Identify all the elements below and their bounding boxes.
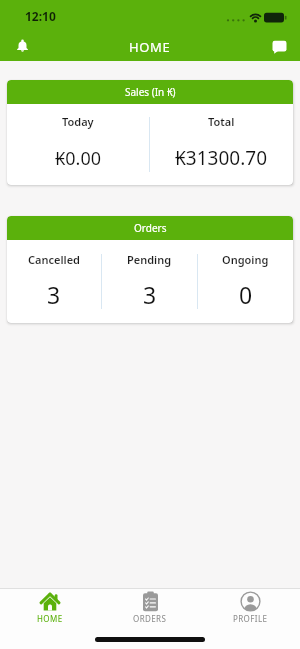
staticText: Total bbox=[208, 114, 235, 129]
button[interactable] bbox=[271, 39, 287, 55]
staticText: ORDERS bbox=[133, 613, 167, 624]
staticText: 0 bbox=[239, 279, 253, 310]
staticText: ₭31300.70 bbox=[175, 145, 268, 171]
button[interactable]: ORDERS bbox=[100, 591, 200, 626]
staticText: Today bbox=[62, 114, 94, 129]
staticText: HOME bbox=[37, 613, 63, 624]
staticText: HOME bbox=[129, 38, 171, 56]
staticText: Cancelled bbox=[28, 252, 80, 267]
button[interactable]: Pending bbox=[102, 240, 197, 323]
button[interactable]: HOME bbox=[0, 591, 100, 626]
staticText: Ongoing bbox=[222, 252, 269, 267]
button[interactable]: Cancelled bbox=[7, 240, 101, 323]
staticText: Pending bbox=[127, 252, 172, 267]
staticText: 12:10 bbox=[25, 8, 56, 24]
button[interactable] bbox=[14, 38, 31, 55]
staticText: Sales (In ₭) bbox=[125, 85, 176, 99]
staticText: Orders bbox=[134, 221, 167, 235]
staticText: 3 bbox=[143, 279, 157, 310]
button[interactable]: PROFILE bbox=[200, 591, 300, 626]
staticText: ₭0.00 bbox=[55, 146, 102, 171]
button[interactable]: Ongoing bbox=[198, 240, 293, 323]
staticText: PROFILE bbox=[233, 613, 268, 624]
staticText: 3 bbox=[47, 279, 61, 310]
